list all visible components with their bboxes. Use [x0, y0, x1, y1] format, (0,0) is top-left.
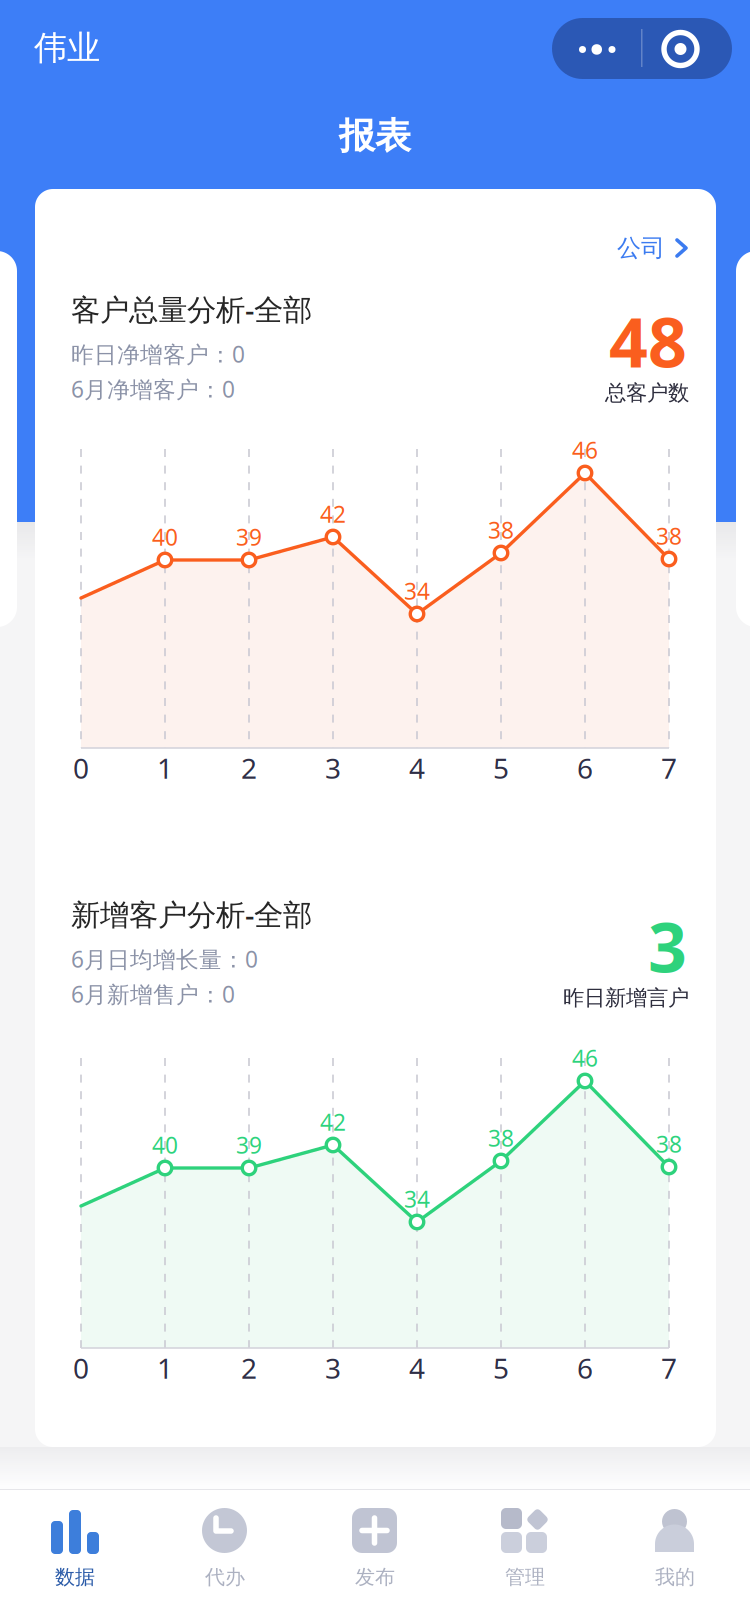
staticText: 管理 — [505, 1565, 545, 1589]
staticText: 4 — [409, 1349, 425, 1387]
staticText: 3 — [325, 749, 341, 787]
staticText: 40 — [152, 522, 178, 552]
staticText: 客户总量分析-全部 — [71, 289, 312, 328]
staticText: 40 — [152, 1130, 178, 1160]
staticText: 数据 — [55, 1565, 95, 1589]
staticText: 38 — [488, 1123, 514, 1153]
staticText: 总客户数 — [605, 380, 689, 406]
staticText: 39 — [236, 1130, 262, 1160]
staticText: 发布 — [355, 1565, 395, 1589]
staticText: 3 — [648, 901, 687, 991]
staticText: 7 — [661, 1349, 677, 1387]
button[interactable]: 代办 — [150, 1490, 300, 1598]
staticText: 报表 — [339, 114, 411, 158]
staticText: 39 — [236, 522, 262, 552]
staticText: 0 — [73, 749, 89, 787]
staticText: 5 — [493, 749, 509, 787]
staticText: 6月净增客户：0 — [71, 374, 235, 404]
staticText: 38 — [656, 521, 682, 551]
button[interactable]: Close mini program — [641, 18, 732, 79]
staticText: 伟业 — [34, 27, 100, 68]
staticText: 代办 — [205, 1565, 245, 1589]
staticText: 38 — [656, 1129, 682, 1159]
staticText: 6月新增售户：0 — [71, 979, 235, 1009]
button[interactable]: More — [552, 18, 641, 79]
staticText: 我的 — [655, 1565, 695, 1589]
staticText: 昨日净增客户：0 — [71, 339, 245, 369]
button[interactable]: 我的 — [600, 1490, 750, 1598]
staticText: 1 — [157, 749, 173, 787]
staticText: 2 — [241, 749, 257, 787]
button[interactable]: 管理 — [450, 1490, 600, 1598]
staticText: 5 — [493, 1349, 509, 1387]
staticText: 48 — [609, 296, 687, 386]
staticText: 38 — [488, 515, 514, 545]
staticText: 6 — [577, 1349, 593, 1387]
staticText: 3 — [325, 1349, 341, 1387]
staticText: 6 — [577, 749, 593, 787]
staticText: 7 — [661, 749, 677, 787]
button[interactable]: 数据 — [0, 1490, 150, 1598]
staticText: 公司 — [617, 233, 665, 263]
staticText: 34 — [404, 1184, 430, 1214]
staticText: 昨日新增言户 — [563, 985, 689, 1011]
staticText: 2 — [241, 1349, 257, 1387]
button[interactable]: 发布 — [300, 1490, 450, 1598]
staticText: 1 — [157, 1349, 173, 1387]
staticText: 6月日均增长量：0 — [71, 944, 258, 974]
staticText: 42 — [320, 1107, 346, 1137]
staticText: 42 — [320, 499, 346, 529]
staticText: 4 — [409, 749, 425, 787]
button[interactable]: 公司 — [510, 222, 690, 274]
staticText: 46 — [572, 1043, 598, 1073]
staticText: 0 — [73, 1349, 89, 1387]
staticText: 34 — [404, 576, 430, 606]
staticText: 新增客户分析-全部 — [71, 894, 312, 933]
staticText: 46 — [572, 435, 598, 465]
